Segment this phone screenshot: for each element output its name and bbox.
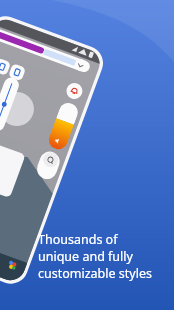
- staticText: Thousands of unique and fully customizab…: [38, 231, 152, 282]
